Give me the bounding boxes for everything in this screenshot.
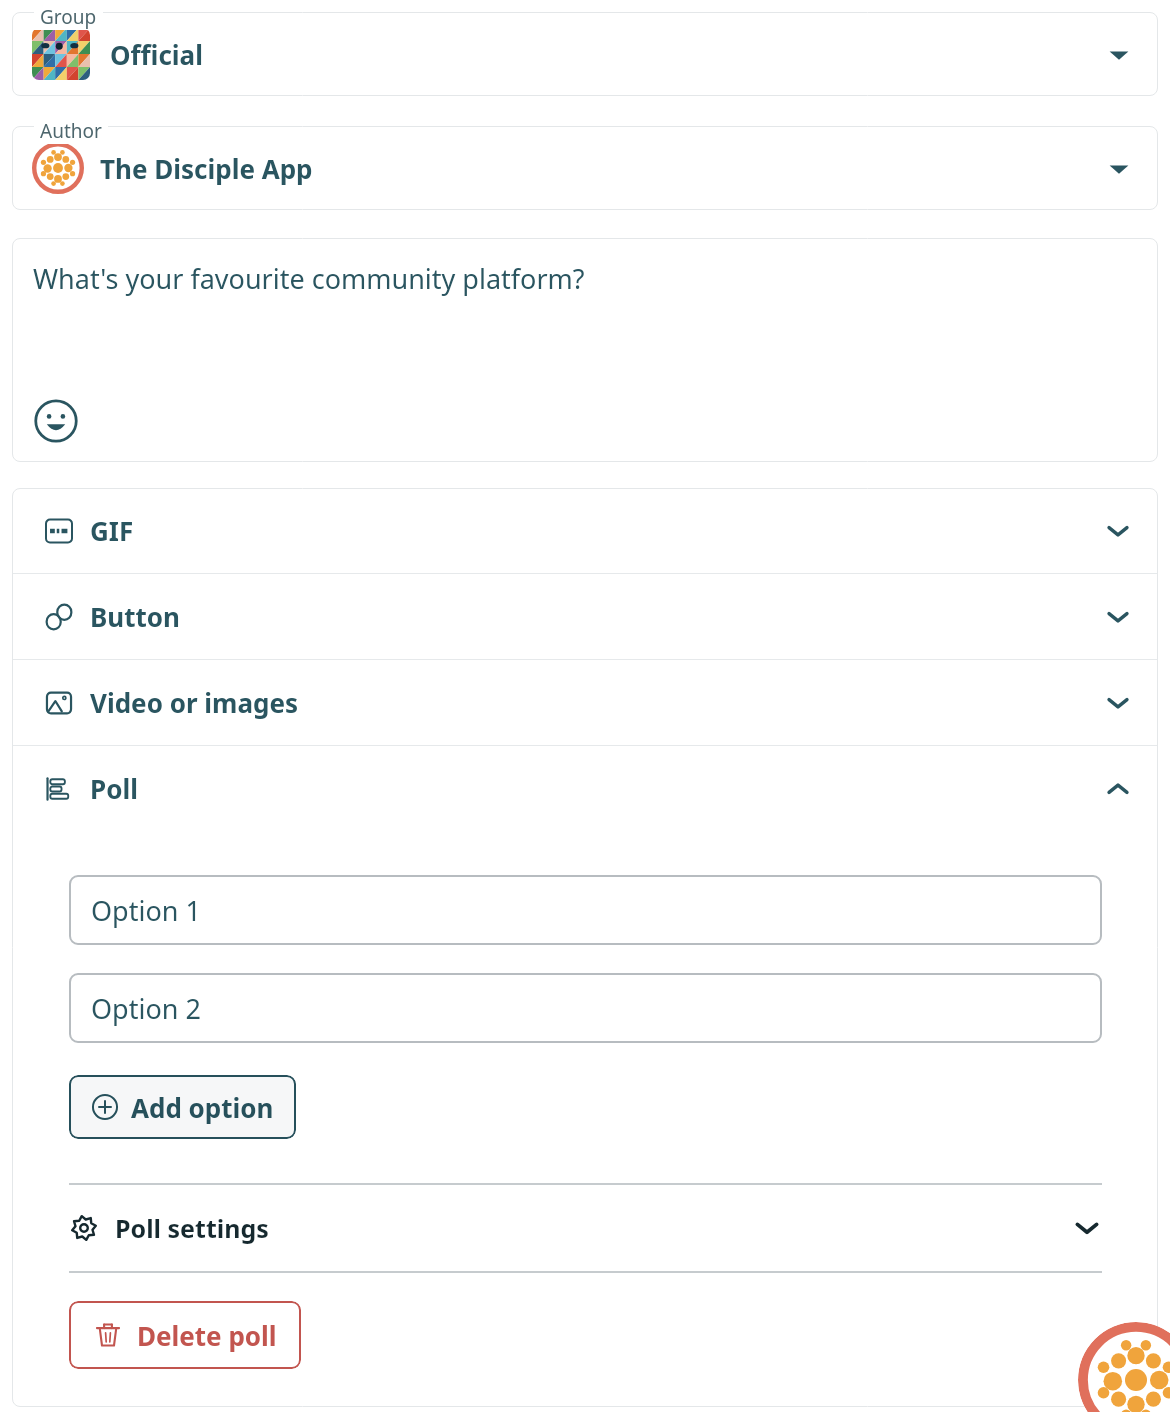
staticText: Group — [40, 4, 97, 30]
button[interactable]: What's your favourite community platform… — [12, 238, 1158, 462]
button[interactable]: Official — [12, 12, 1158, 96]
staticText: What's your favourite community platform… — [33, 260, 585, 297]
button[interactable]: Create post — [1078, 1322, 1170, 1412]
staticText: Add option — [131, 1090, 274, 1125]
button[interactable]: Option 2 — [69, 973, 1102, 1043]
staticText: GIF — [90, 513, 134, 548]
button[interactable]: Delete poll — [69, 1301, 301, 1369]
button[interactable]: Poll — [12, 746, 1158, 831]
staticText: Author — [40, 118, 102, 144]
button[interactable]: Button — [12, 574, 1158, 659]
button[interactable]: GIF — [12, 488, 1158, 573]
staticText: Official — [110, 37, 203, 72]
staticText: The Disciple App — [100, 151, 313, 186]
staticText: Poll settings — [115, 1211, 269, 1245]
button[interactable]: Video or images — [12, 660, 1158, 745]
staticText: Option 1 — [91, 892, 201, 929]
button[interactable]: Add option — [69, 1075, 296, 1139]
button[interactable]: The Disciple App — [12, 126, 1158, 210]
staticText: Poll — [90, 771, 138, 806]
staticText: Delete poll — [137, 1318, 277, 1353]
button[interactable]: Option 1 — [69, 875, 1102, 945]
button[interactable]: Poll settings — [69, 1185, 1102, 1271]
button[interactable]: Emoji — [33, 398, 79, 444]
staticText: Button — [90, 599, 180, 634]
staticText: Option 2 — [91, 990, 201, 1027]
staticText: Video or images — [90, 685, 298, 720]
